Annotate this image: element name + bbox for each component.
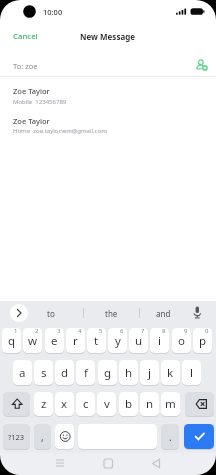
staticText: 5 — [99, 328, 103, 335]
staticText: 0 — [205, 328, 209, 335]
staticText: k — [167, 365, 174, 381]
staticText: Mobile 123456789 — [13, 98, 67, 106]
button[interactable]: g — [98, 360, 117, 385]
staticText: q — [8, 333, 16, 349]
button[interactable]: l — [182, 360, 201, 385]
button[interactable]: s — [34, 360, 53, 385]
button[interactable] — [55, 424, 74, 449]
button[interactable] — [0, 112, 216, 140]
staticText: b — [125, 396, 133, 412]
staticText: l — [190, 365, 193, 381]
button[interactable]: d — [55, 360, 74, 385]
staticText: Zoe Taylor — [13, 116, 50, 126]
button[interactable] — [195, 58, 209, 72]
button[interactable]: w — [23, 328, 42, 353]
staticText: s — [41, 365, 47, 381]
staticText: and — [156, 308, 171, 319]
staticText: f — [84, 365, 88, 381]
button[interactable] — [0, 82, 216, 110]
staticText: m — [165, 396, 176, 412]
staticText: 7 — [141, 328, 145, 335]
staticText: 2 — [35, 328, 39, 335]
button[interactable]: , — [34, 424, 51, 449]
button[interactable] — [190, 305, 204, 321]
staticText: Zoe Taylor — [13, 86, 50, 96]
button[interactable]: k — [161, 360, 180, 385]
button[interactable]: z — [34, 392, 53, 416]
button[interactable]: r — [66, 328, 85, 353]
button[interactable]: m — [161, 392, 180, 416]
button[interactable]: and — [148, 303, 178, 323]
button[interactable]: c — [76, 392, 95, 416]
staticText: 10:00 — [43, 7, 63, 17]
staticText: h — [125, 365, 133, 381]
staticText: c — [83, 396, 89, 412]
staticText: the — [105, 308, 118, 319]
button[interactable]: j — [140, 360, 159, 385]
button[interactable] — [185, 392, 214, 416]
button[interactable] — [3, 392, 30, 416]
button[interactable]: i — [150, 328, 169, 353]
staticText: , — [41, 430, 44, 444]
staticText: x — [61, 396, 68, 412]
staticText: 4 — [78, 328, 82, 335]
staticText: a — [19, 365, 26, 381]
staticText: 8 — [162, 328, 166, 335]
staticText: Home zoe.taylor.wm@gmail.com — [13, 127, 107, 135]
staticText: v — [104, 396, 110, 412]
button[interactable]: ?123 — [3, 424, 30, 449]
button[interactable]: u — [129, 328, 148, 353]
staticText: g — [104, 365, 112, 381]
staticText: w — [28, 333, 38, 349]
button[interactable]: v — [97, 392, 116, 416]
staticText: y — [115, 333, 121, 349]
button[interactable]: a — [13, 360, 32, 385]
button[interactable]: p — [193, 328, 212, 353]
button[interactable]: x — [55, 392, 74, 416]
button[interactable] — [184, 424, 214, 449]
staticText: p — [199, 333, 207, 349]
staticText: to — [47, 308, 55, 319]
button[interactable]: the — [96, 303, 126, 323]
staticText: To: zoe — [13, 61, 38, 71]
button[interactable]: o — [172, 328, 191, 353]
staticText: 9 — [184, 328, 188, 335]
staticText: 3 — [57, 328, 61, 335]
button[interactable]: q — [2, 328, 21, 353]
staticText: ?123 — [8, 432, 25, 442]
button[interactable]: h — [119, 360, 138, 385]
staticText: r — [73, 333, 78, 349]
staticText: d — [61, 365, 69, 381]
staticText: New Message — [80, 31, 136, 42]
staticText: o — [178, 333, 185, 349]
staticText: . — [169, 430, 172, 444]
button[interactable]: f — [76, 360, 95, 385]
staticText: j — [148, 365, 151, 381]
staticText: Cancel — [13, 31, 38, 42]
button[interactable]: Cancel — [13, 31, 38, 42]
staticText: 1 — [14, 328, 18, 335]
staticText: u — [135, 333, 143, 349]
staticText: t — [94, 333, 99, 349]
button[interactable]: n — [140, 392, 159, 416]
staticText: i — [158, 333, 161, 349]
staticText: e — [51, 333, 58, 349]
button[interactable] — [10, 304, 28, 322]
button[interactable]: y — [108, 328, 127, 353]
button[interactable]: e — [45, 328, 64, 353]
staticText: n — [146, 396, 154, 412]
button[interactable]: to — [36, 303, 66, 323]
button[interactable]: b — [119, 392, 138, 416]
staticText: 6 — [120, 328, 124, 335]
button[interactable]: . — [161, 424, 179, 449]
staticText: z — [41, 396, 47, 412]
button[interactable]: t — [87, 328, 106, 353]
